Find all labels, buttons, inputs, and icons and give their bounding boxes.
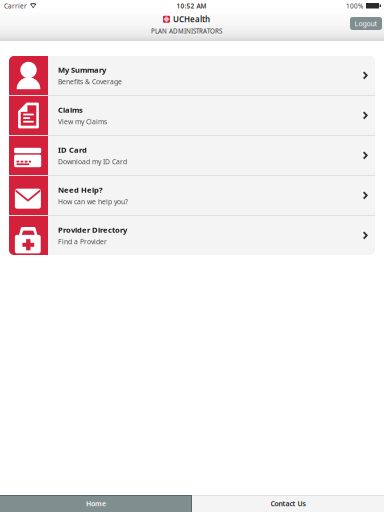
staticText: Logout	[354, 19, 377, 28]
button[interactable]: My Summary	[9, 56, 375, 95]
staticText: Carrier	[4, 2, 27, 10]
staticText: View my Claims	[58, 117, 107, 126]
button[interactable]: Provider Directory	[9, 216, 375, 255]
button[interactable]: Need Help?	[9, 176, 375, 215]
staticText: 100%	[346, 2, 363, 10]
button[interactable]: Home	[0, 495, 192, 512]
button[interactable]: ID Card	[9, 136, 375, 175]
button[interactable]: Contact Us	[192, 495, 384, 512]
staticText: Provider Directory	[58, 225, 127, 235]
staticText: Contact Us	[270, 499, 305, 508]
staticText: Download my ID Card	[58, 157, 127, 166]
staticText: Home	[86, 499, 106, 508]
staticText: ID Card	[58, 145, 87, 155]
button[interactable]: Claims	[9, 96, 375, 135]
staticText: 10:52 AM	[176, 2, 206, 10]
staticText: UCHealth	[173, 14, 210, 25]
staticText: Claims	[58, 105, 83, 115]
staticText: Benefits & Coverage	[58, 77, 122, 86]
button[interactable]: Logout	[350, 17, 382, 30]
staticText: My Summary	[58, 65, 106, 75]
staticText: Find a Provider	[58, 237, 107, 246]
staticText: How can we help you?	[58, 197, 128, 206]
staticText: PLAN ADMINISTRATORS	[151, 27, 222, 35]
staticText: Need Help?	[58, 185, 103, 195]
